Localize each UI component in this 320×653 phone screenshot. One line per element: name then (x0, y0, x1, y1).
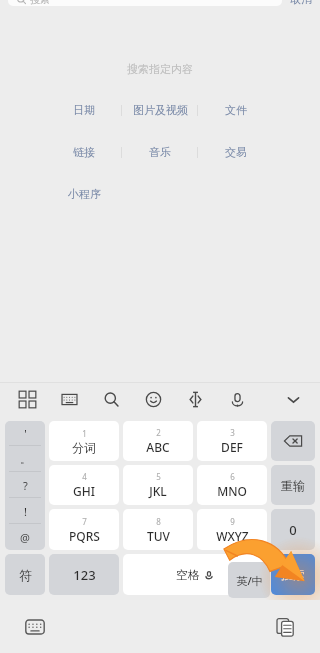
staticText: 文件 (225, 103, 247, 117)
button[interactable]: 符 (5, 554, 45, 595)
button[interactable]: 取消 (290, 0, 312, 6)
staticText: 英/中 (236, 573, 263, 588)
staticText: PQRS (69, 528, 100, 544)
staticText: 符 (19, 567, 32, 583)
staticText: 小程序 (68, 187, 101, 201)
button[interactable]: Backspace (271, 421, 315, 461)
staticText: 3 (230, 427, 235, 438)
button[interactable]: Voice input (224, 386, 250, 412)
button[interactable]: 重输 (271, 465, 315, 505)
button[interactable]: 5 (123, 465, 193, 505)
staticText: 取消 (290, 0, 312, 6)
staticText: 0 (289, 521, 297, 539)
staticText: 1 (82, 428, 87, 439)
button[interactable]: ! (5, 498, 45, 524)
button[interactable]: ' (5, 421, 45, 446)
button[interactable]: @ (5, 524, 45, 550)
staticText: 4 (82, 471, 87, 482)
staticText: ? (23, 478, 28, 493)
staticText: 9 (230, 516, 235, 527)
button[interactable]: 小程序 (68, 185, 101, 203)
staticText: 。 (20, 452, 31, 466)
button[interactable]: 4 (49, 465, 119, 505)
button[interactable]: 2 (123, 421, 193, 461)
button[interactable]: 搜索 (271, 554, 315, 595)
button[interactable]: 图片及视频 (133, 101, 188, 119)
button[interactable]: 文件 (225, 101, 247, 119)
staticText: 日期 (73, 103, 95, 117)
button[interactable]: 3 (197, 421, 267, 461)
staticText: ! (24, 504, 27, 519)
staticText: ABC (146, 439, 170, 455)
button[interactable]: Emoji (140, 386, 166, 412)
staticText: 图片及视频 (133, 103, 188, 117)
button[interactable]: Keyboard layout (56, 386, 82, 412)
staticText: 7 (82, 516, 87, 527)
staticText: @ (20, 530, 30, 545)
staticText: JKL (149, 483, 167, 499)
staticText: 搜索 (281, 567, 305, 582)
button[interactable]: 8 (123, 509, 193, 550)
staticText: 分词 (72, 440, 96, 455)
button[interactable]: 链接 (73, 143, 95, 161)
button[interactable]: 空格 (123, 554, 267, 595)
staticText: ' (24, 426, 27, 441)
staticText: 交易 (225, 145, 247, 159)
staticText: 123 (73, 566, 96, 584)
staticText: 搜索指定内容 (127, 62, 193, 76)
button[interactable]: 123 (49, 554, 119, 595)
staticText: 搜索 (30, 0, 50, 6)
button[interactable]: 英/中 (228, 562, 270, 598)
button[interactable]: 7 (49, 509, 119, 550)
button[interactable]: 交易 (225, 143, 247, 161)
button[interactable]: 音乐 (149, 143, 171, 161)
button[interactable]: 搜索 (8, 0, 282, 6)
staticText: GHI (73, 483, 95, 499)
button[interactable]: Move cursor (182, 386, 208, 412)
button[interactable]: 1 (49, 421, 119, 461)
button[interactable]: ? (5, 472, 45, 498)
staticText: 重输 (281, 478, 305, 493)
staticText: MNO (217, 483, 247, 499)
staticText: DEF (221, 439, 243, 455)
button[interactable]: Keyboard (18, 610, 52, 644)
button[interactable]: 日期 (73, 101, 95, 119)
button[interactable]: Search (98, 386, 124, 412)
staticText: 5 (156, 471, 161, 482)
staticText: 音乐 (149, 145, 171, 159)
button[interactable]: Hide keyboard (280, 386, 306, 412)
staticText: WXYZ (216, 528, 249, 544)
staticText: 空格 (176, 567, 200, 582)
button[interactable]: 9 (197, 509, 267, 550)
button[interactable]: 0 (271, 509, 315, 550)
staticText: 6 (230, 471, 235, 482)
staticText: 链接 (73, 145, 95, 159)
staticText: 8 (156, 516, 161, 527)
staticText: TUV (147, 528, 170, 544)
staticText: 2 (156, 427, 161, 438)
button[interactable]: Panels (14, 386, 40, 412)
button[interactable]: 6 (197, 465, 267, 505)
button[interactable]: Clipboard (268, 610, 302, 644)
button[interactable]: 。 (5, 446, 45, 472)
